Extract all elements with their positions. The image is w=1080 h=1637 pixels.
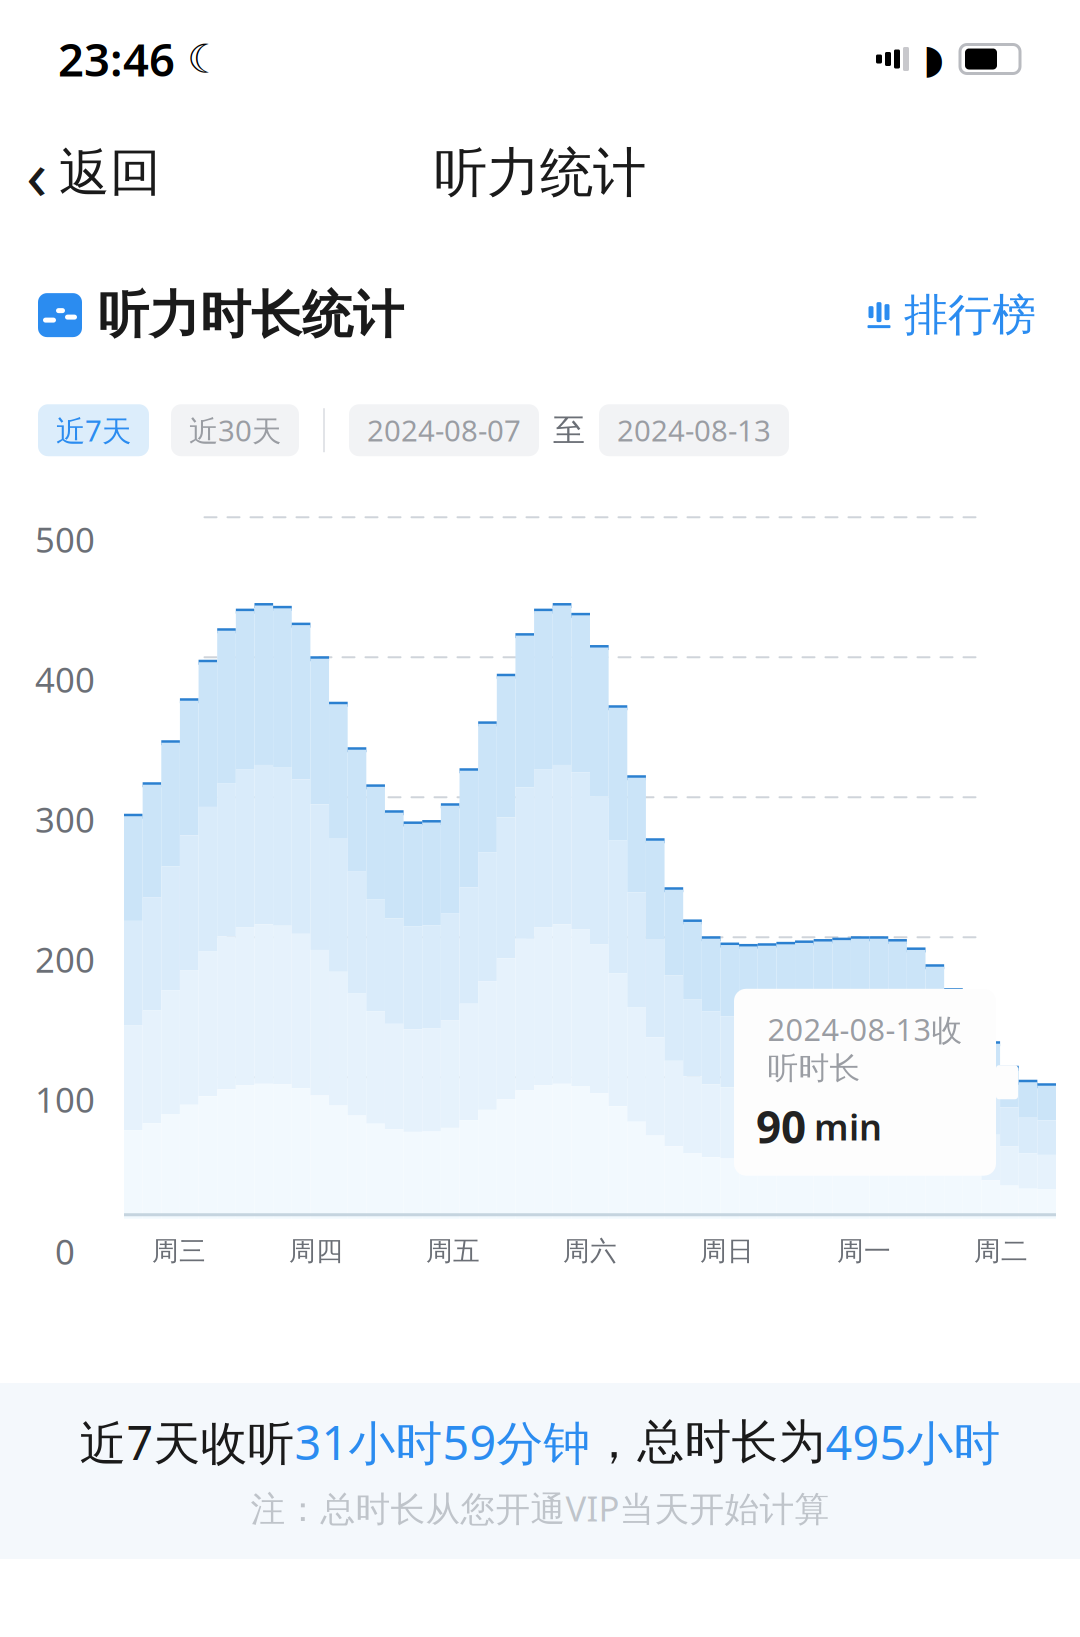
staticText: 返回 [59, 142, 161, 204]
button[interactable]: 近30天 [171, 404, 299, 456]
staticText: 500 [35, 516, 95, 562]
button[interactable]: 排行榜 [860, 285, 1042, 345]
staticText: 周三 [152, 1235, 206, 1268]
staticText: 0 [55, 1228, 75, 1274]
staticText: 周六 [563, 1235, 617, 1268]
staticText: 100 [35, 1076, 95, 1122]
staticText: 听力时长统计 [98, 284, 404, 346]
staticText: 90 [756, 1097, 806, 1156]
staticText: 周一 [837, 1235, 891, 1268]
staticText: 近30天 [189, 411, 281, 450]
staticText: 2024-08-13 [617, 411, 771, 450]
staticText: 495小时 [825, 1411, 1000, 1473]
staticText: 周五 [426, 1235, 480, 1268]
staticText: ◗ [923, 36, 944, 82]
staticText: 300 [35, 796, 95, 842]
staticText: 近7天 [56, 411, 131, 450]
button[interactable]: 2024-08-13 [599, 404, 789, 456]
button[interactable]: 2024-08-07 [349, 404, 539, 456]
button[interactable]: ‹ [0, 125, 187, 221]
staticText: min [814, 1102, 882, 1150]
staticText: ☾ [187, 36, 223, 82]
staticText: 400 [35, 656, 95, 702]
staticText: 至 [553, 411, 585, 450]
staticText: 31小时59分钟 [294, 1411, 590, 1473]
staticText: 排行榜 [904, 288, 1036, 342]
staticText: 23:46 [58, 29, 175, 89]
staticText: ，总时长为 [590, 1413, 825, 1471]
staticText: 近7天收听 [79, 1411, 294, 1473]
staticText: 2024-08-13收听时长 [767, 1009, 962, 1087]
staticText: 注：总时长从您开通VIP当天开始计算 [250, 1485, 829, 1531]
staticText: 听力统计 [434, 140, 646, 206]
staticText: 200 [35, 936, 95, 982]
staticText: 周二 [974, 1235, 1028, 1268]
staticText: 2024-08-07 [367, 411, 521, 450]
button[interactable]: 近7天 [38, 404, 149, 456]
staticText: ‹ [26, 127, 47, 219]
staticText: 周日 [700, 1235, 754, 1268]
staticText: 周四 [289, 1235, 343, 1268]
